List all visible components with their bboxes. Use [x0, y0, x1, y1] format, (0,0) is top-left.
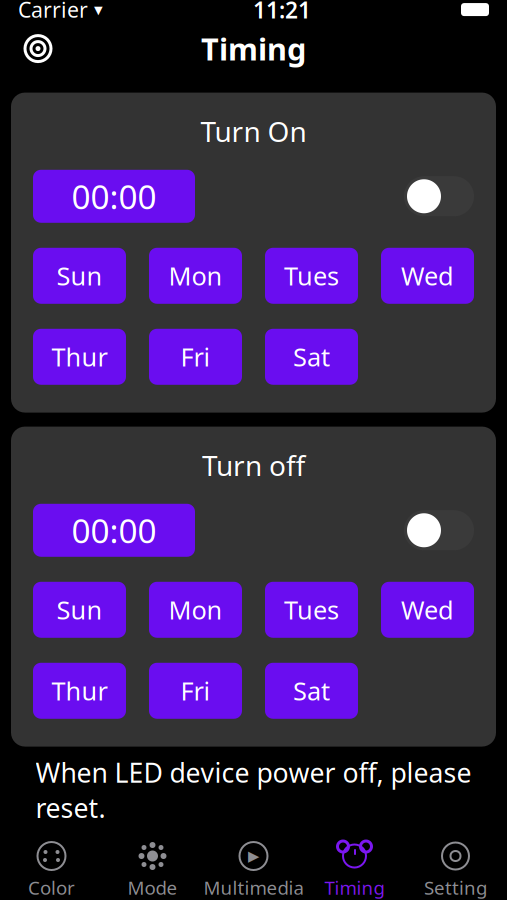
staticText: Sat — [293, 340, 330, 373]
staticText: Turn On — [200, 113, 306, 150]
staticText: ▶ — [248, 848, 259, 864]
staticText: Turn off — [202, 447, 305, 484]
staticText: Mode — [127, 875, 177, 900]
staticText: Fri — [180, 674, 210, 707]
button[interactable]: ▶ — [203, 839, 304, 900]
staticText: Tues — [284, 259, 339, 292]
button[interactable]: Tues — [265, 582, 358, 638]
staticText: Timing — [201, 28, 306, 69]
button[interactable]: Mode — [102, 839, 203, 900]
staticText: Wed — [401, 593, 454, 626]
staticText: Mon — [168, 259, 222, 292]
button[interactable]: Thur — [33, 329, 126, 385]
button[interactable]: Sat — [265, 329, 358, 385]
staticText: 11:21 — [253, 0, 311, 25]
button[interactable]: Sat — [265, 663, 358, 719]
staticText: Sat — [293, 674, 330, 707]
staticText: Fri — [180, 340, 210, 373]
staticText: Color — [28, 875, 75, 900]
staticText: 00:00 — [71, 508, 156, 552]
button[interactable]: 00:00 — [33, 170, 195, 223]
staticText: ▾ — [94, 0, 103, 19]
button[interactable]: Wed — [381, 248, 474, 304]
button[interactable]: Turn on schedule — [404, 176, 474, 216]
staticText: When LED device power off, please reset. — [35, 755, 471, 825]
staticText: Timing — [324, 875, 384, 900]
staticText: Thur — [51, 340, 107, 373]
staticText: Sun — [56, 593, 102, 626]
button[interactable]: Fri — [149, 329, 242, 385]
button[interactable]: Setting — [405, 839, 506, 900]
staticText: 00:00 — [71, 174, 156, 218]
staticText: Multimedia — [203, 875, 303, 900]
button[interactable]: Mon — [149, 248, 242, 304]
staticText: Tues — [284, 593, 339, 626]
button[interactable]: Bluetooth device — [18, 29, 58, 69]
staticText: Carrier — [18, 0, 88, 24]
staticText: Thur — [51, 674, 107, 707]
button[interactable]: Wed — [381, 582, 474, 638]
button[interactable]: Sun — [33, 582, 126, 638]
button[interactable]: Mon — [149, 582, 242, 638]
button[interactable]: Fri — [149, 663, 242, 719]
button[interactable]: Sun — [33, 248, 126, 304]
button[interactable]: Turn off schedule — [404, 510, 474, 550]
button[interactable]: Color — [1, 839, 102, 900]
staticText: Mon — [168, 593, 222, 626]
staticText: Sun — [56, 259, 102, 292]
staticText: Wed — [401, 259, 454, 292]
staticText: Setting — [424, 875, 487, 900]
button[interactable]: Tues — [265, 248, 358, 304]
button[interactable]: Thur — [33, 663, 126, 719]
button[interactable]: Timing — [304, 839, 405, 900]
button[interactable]: 00:00 — [33, 504, 195, 557]
